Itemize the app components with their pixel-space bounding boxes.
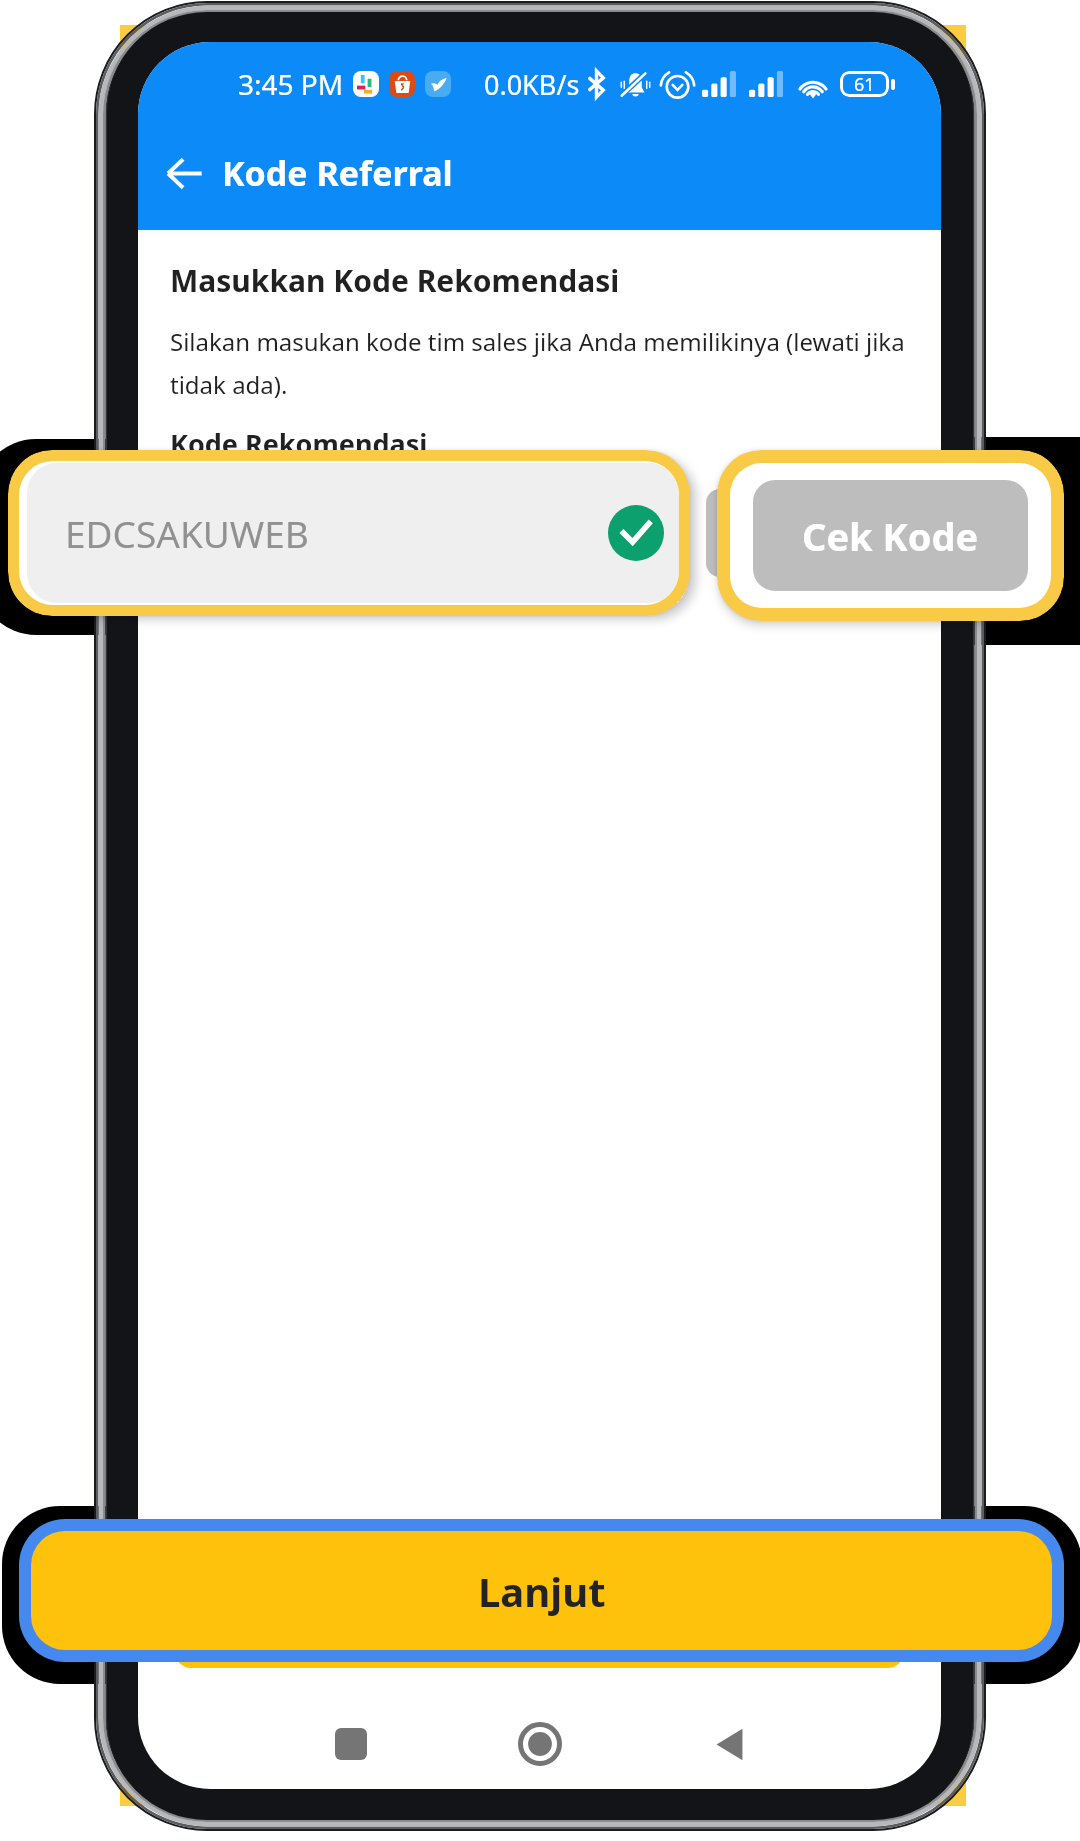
staticText: Lanjut xyxy=(478,1564,606,1618)
button[interactable]: Cek Kode xyxy=(706,489,904,577)
button[interactable]: Back xyxy=(154,143,214,203)
button[interactable]: Recents xyxy=(309,1702,393,1786)
staticText: 0.0KB/s xyxy=(484,66,580,103)
button[interactable]: Lanjut xyxy=(175,1558,904,1668)
staticText: 3:45 PM xyxy=(238,65,344,103)
staticText: Cek Kode xyxy=(802,510,979,562)
button[interactable]: Back xyxy=(687,1702,771,1786)
button[interactable]: EDCSAKUWEB xyxy=(27,463,679,603)
button[interactable]: Lanjut xyxy=(31,1531,1052,1650)
button[interactable] xyxy=(170,489,688,577)
staticText: Kode Rekomendasi xyxy=(170,425,428,462)
staticText: Kode Referral xyxy=(222,150,453,196)
staticText: Cek Kode xyxy=(735,513,875,554)
button[interactable]: Cek Kode xyxy=(753,480,1028,591)
staticText: Lanjut xyxy=(482,1589,597,1638)
staticText: Silakan masukan kode tim sales jika Anda… xyxy=(170,325,905,401)
staticText: EDCSAKUWEB xyxy=(65,508,309,558)
staticText: 61 xyxy=(854,72,875,97)
staticText: Masukkan Kode Rekomendasi xyxy=(170,260,620,301)
button[interactable]: Home xyxy=(498,1702,582,1786)
